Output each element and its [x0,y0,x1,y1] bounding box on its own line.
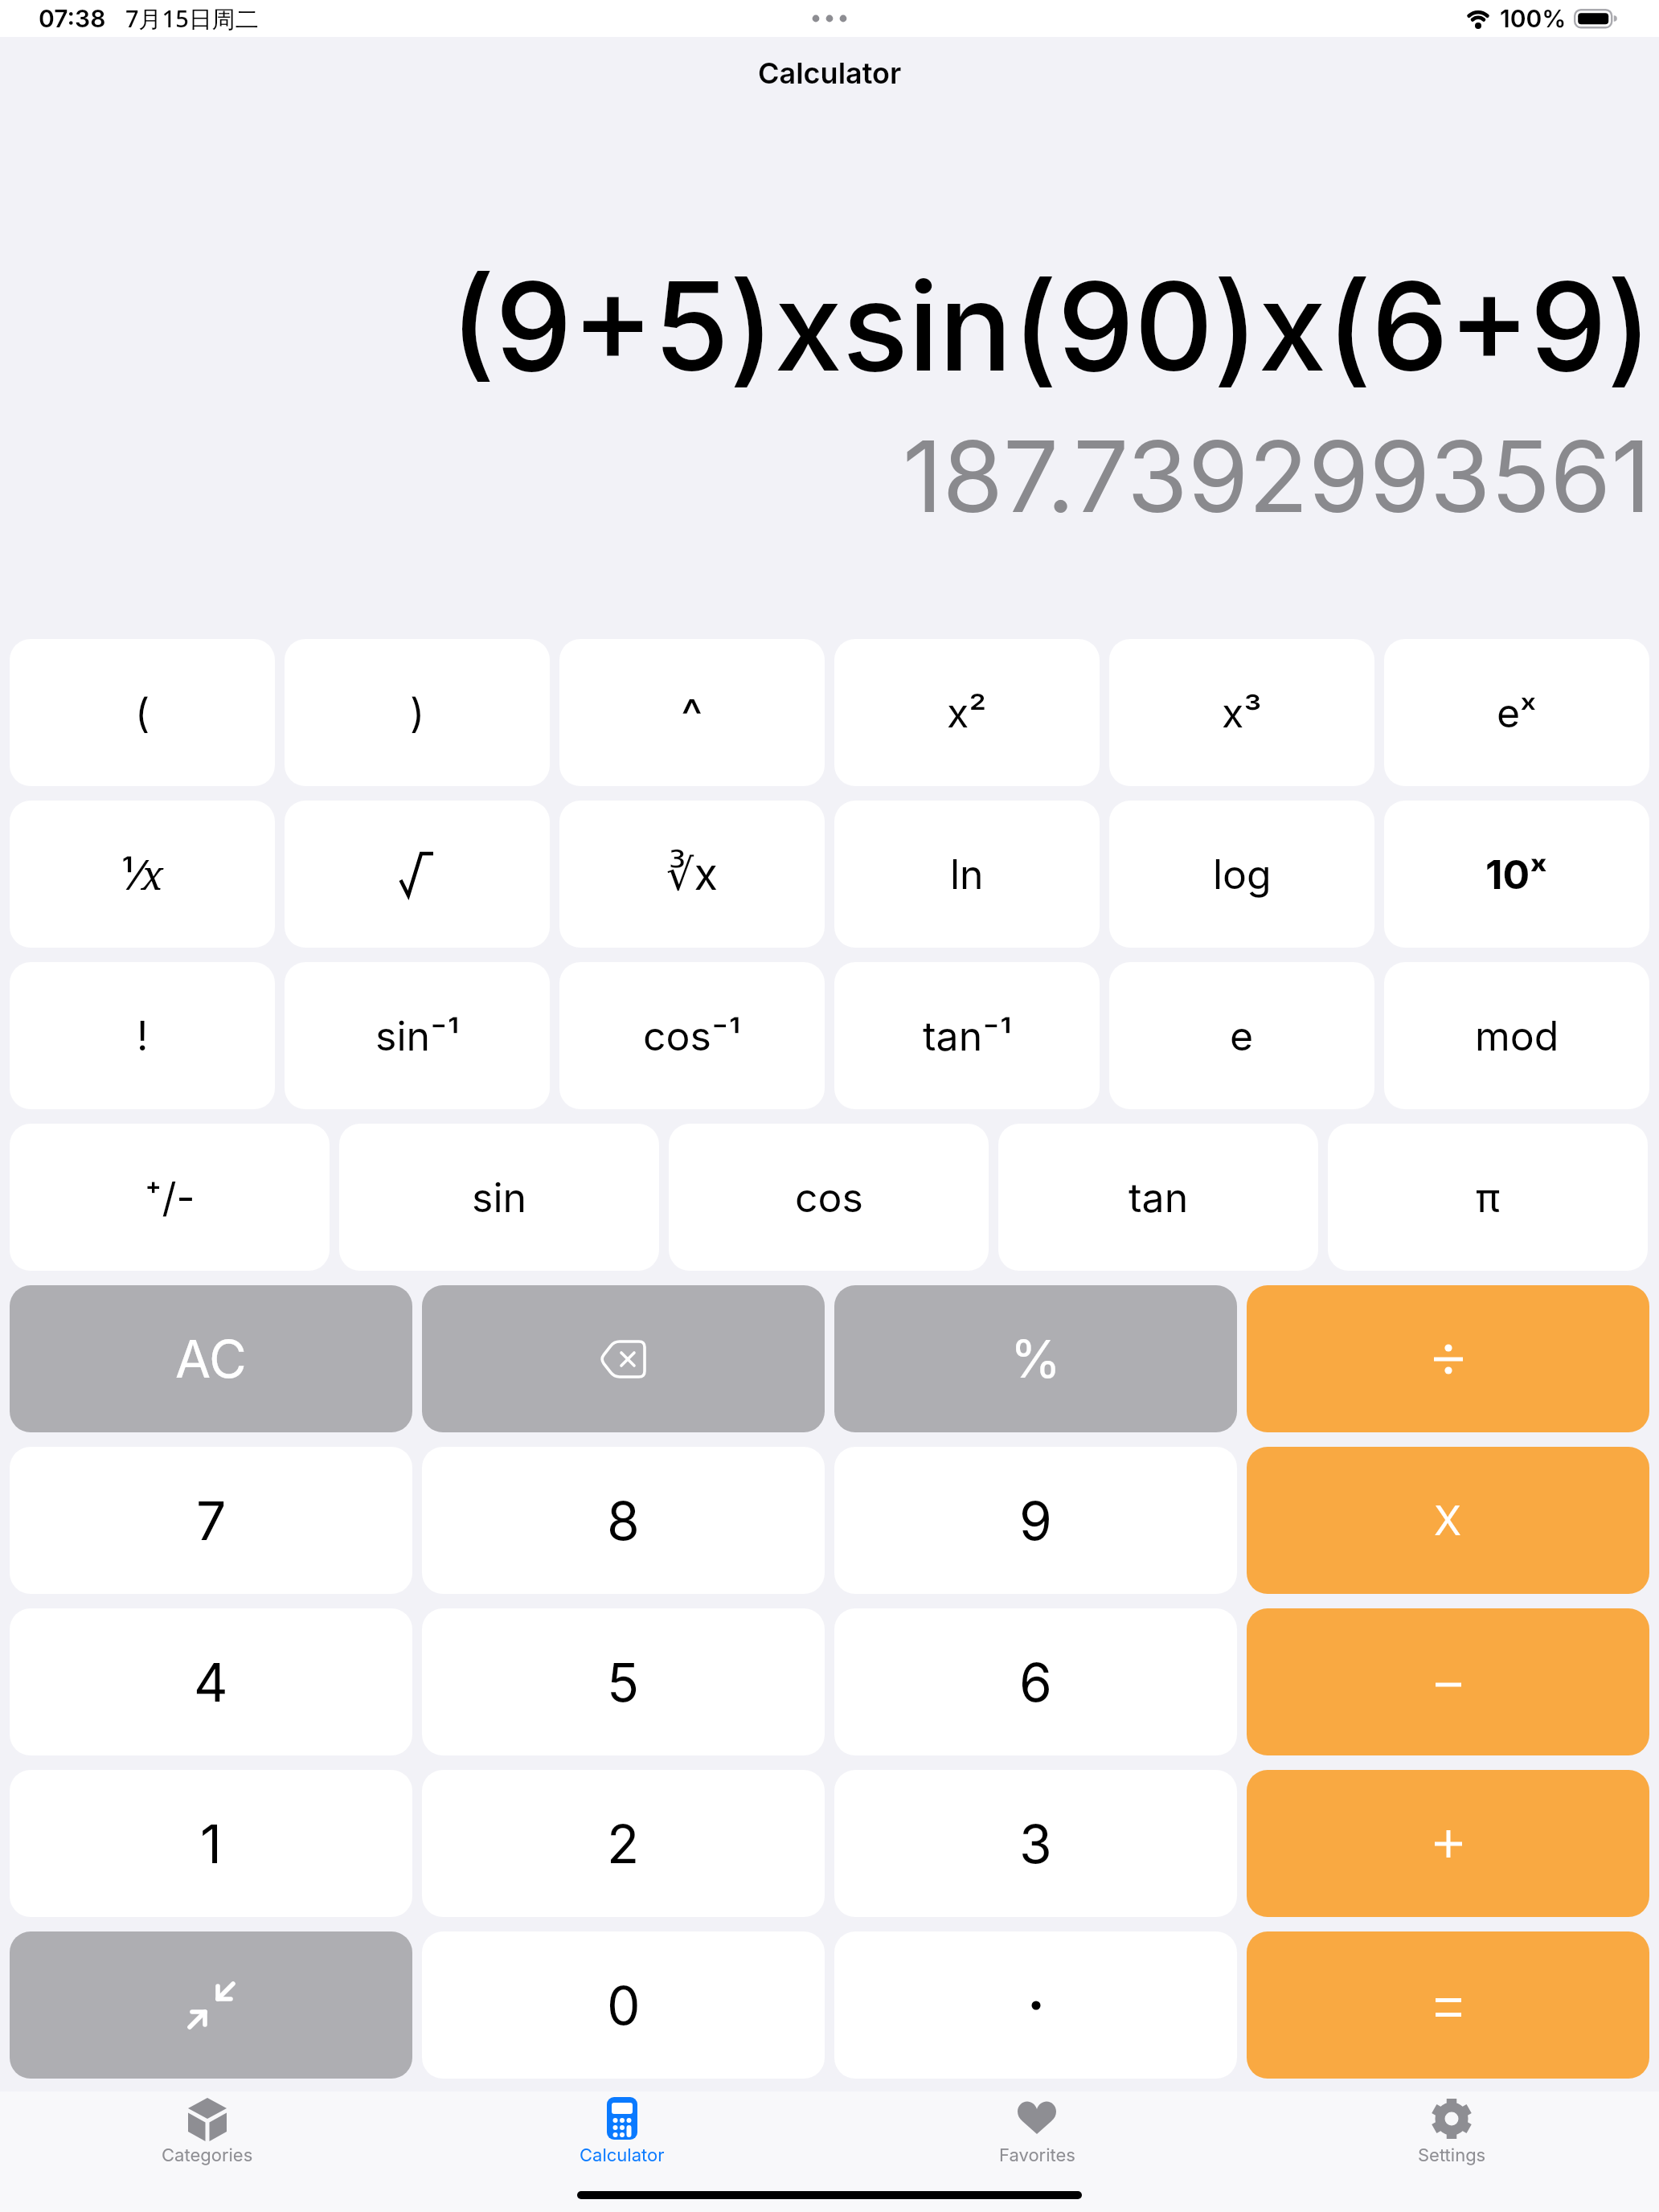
staticText: eˣ [1497,689,1537,737]
button[interactable]: log [1109,801,1374,948]
button[interactable]: AC [10,1285,412,1432]
staticText: ⁺/- [145,1174,195,1222]
button[interactable]: sin⁻¹ [285,962,550,1109]
button[interactable]: ¹⁄x [10,801,275,948]
button[interactable]: 6 [834,1608,1237,1755]
button[interactable]: ⁺/- [10,1124,330,1271]
button[interactable] [834,1931,1237,2079]
staticText: % [1010,1328,1061,1390]
staticText: ∛x [666,848,718,900]
button[interactable]: tan [998,1124,1318,1271]
staticText: ) [410,689,425,737]
staticText: sin⁻¹ [375,1012,460,1060]
staticText: tan⁻¹ [923,1012,1012,1060]
button[interactable]: eˣ [1384,639,1649,786]
staticText: Settings [1418,2144,1486,2166]
button[interactable] [10,1931,412,2079]
button[interactable]: cos⁻¹ [559,962,825,1109]
button[interactable] [1247,1770,1649,1917]
staticText: cos⁻¹ [643,1012,741,1060]
button[interactable]: 7 [10,1447,412,1594]
staticText: 0 [607,1973,641,2038]
button[interactable]: 4 [10,1608,412,1755]
staticText: ^ [681,687,703,743]
button[interactable] [285,801,550,948]
button[interactable]: mod [1384,962,1649,1109]
staticText: Calculator [580,2144,665,2166]
button[interactable]: X [1247,1447,1649,1594]
button[interactable]: π [1328,1124,1648,1271]
button[interactable]: ! [10,962,275,1109]
button[interactable] [1247,1931,1649,2079]
staticText: 4 [194,1650,228,1714]
button[interactable]: Settings [1244,2091,1659,2212]
button[interactable]: ) [285,639,550,786]
button[interactable]: 9 [834,1447,1237,1594]
staticText: (9+5)xsin(90)x(6+9) [450,252,1653,400]
button[interactable]: x² [834,639,1100,786]
staticText: 8 [607,1489,640,1553]
button[interactable]: 10ˣ [1384,801,1649,948]
button[interactable]: 2 [422,1770,825,1917]
staticText: x² [947,689,987,737]
staticText: 1 [200,1812,222,1876]
button[interactable]: x³ [1109,639,1374,786]
staticText: tan [1129,1174,1189,1222]
staticText: 10ˣ [1485,850,1548,899]
staticText: 7 [196,1489,227,1553]
staticText: ln [950,850,984,899]
staticText: 9 [1019,1489,1052,1553]
button[interactable]: ( [10,639,275,786]
staticText: e [1230,1012,1254,1060]
staticText: mod [1475,1012,1559,1060]
staticText: π [1476,1174,1501,1222]
staticText: Calculator [758,55,902,91]
staticText: ! [137,1012,149,1060]
staticText: log [1213,850,1272,899]
staticText: 6 [1019,1650,1052,1714]
button[interactable]: 5 [422,1608,825,1755]
button[interactable] [422,1285,825,1432]
button[interactable]: Calculator [415,2091,829,2212]
button[interactable]: Categories [0,2091,415,2212]
button[interactable] [1247,1608,1649,1755]
staticText: AC [175,1328,247,1390]
button[interactable]: cos [669,1124,989,1271]
button[interactable]: 8 [422,1447,825,1594]
staticText: x³ [1222,689,1262,737]
button[interactable]: sin [339,1124,659,1271]
staticText: ¹⁄x [121,847,164,902]
staticText: 3 [1019,1812,1052,1876]
button[interactable]: 0 [422,1931,825,2079]
button[interactable]: % [834,1285,1237,1432]
staticText: X [1434,1497,1462,1545]
staticText: 7月15日周二 [125,2,259,35]
staticText: 2 [607,1812,640,1876]
button[interactable]: ln [834,801,1100,948]
staticText: Favorites [999,2144,1075,2166]
button[interactable]: tan⁻¹ [834,962,1100,1109]
button[interactable]: Favorites [829,2091,1244,2212]
staticText: 07:38 [39,4,106,33]
staticText: 100% [1500,4,1567,33]
button[interactable]: 1 [10,1770,412,1917]
button[interactable]: 3 [834,1770,1237,1917]
button[interactable]: ^ [559,639,825,786]
staticText: Categories [162,2144,253,2166]
button[interactable]: e [1109,962,1374,1109]
staticText: 187.7392993561 [903,417,1651,536]
staticText: ( [135,689,150,737]
staticText: 5 [607,1650,640,1714]
staticText: sin [472,1174,527,1222]
button[interactable] [1247,1285,1649,1432]
staticText: cos [795,1174,863,1222]
button[interactable]: ∛x [559,801,825,948]
